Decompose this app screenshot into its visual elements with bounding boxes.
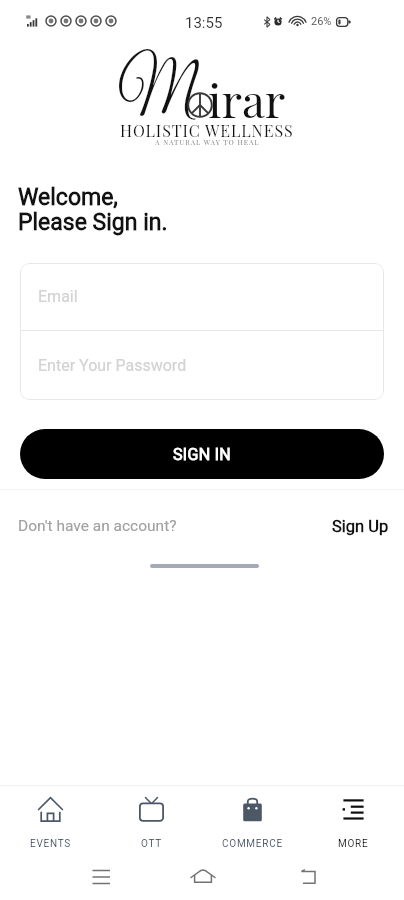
button[interactable]: Enter Your Password [20, 331, 384, 399]
staticText: Email [38, 287, 78, 306]
button[interactable]: Back [288, 856, 329, 897]
staticText: 13:55 [185, 14, 223, 32]
button[interactable]: EVENTS [0, 786, 101, 854]
staticText: Welcome, [18, 184, 118, 211]
button[interactable]: Email [20, 263, 384, 330]
staticText: MORE [338, 838, 369, 850]
staticText: irar [208, 68, 286, 129]
staticText: Sign Up [332, 517, 389, 536]
staticText: Don't have an account? [18, 517, 177, 535]
button[interactable]: OTT [101, 786, 202, 854]
button[interactable]: Recent apps [81, 856, 122, 897]
staticText: A NATURAL WAY TO HEAL [155, 137, 260, 146]
staticText: OTT [141, 838, 163, 850]
staticText: COMMERCE [222, 838, 283, 850]
staticText: Enter Your Password [38, 356, 187, 375]
button[interactable]: Home [182, 856, 223, 897]
button[interactable]: SIGN IN [20, 429, 384, 479]
staticText: M [118, 47, 192, 142]
button[interactable]: MORE [303, 786, 404, 854]
staticText: EVENTS [30, 838, 72, 850]
staticText: SIGN IN [173, 445, 231, 464]
button[interactable]: COMMERCE [202, 786, 303, 854]
staticText: HOLISTIC WELLNESS [120, 120, 294, 141]
staticText: Please Sign in. [18, 209, 168, 236]
staticText: 26% [311, 15, 332, 28]
button[interactable]: Sign Up [332, 517, 404, 536]
